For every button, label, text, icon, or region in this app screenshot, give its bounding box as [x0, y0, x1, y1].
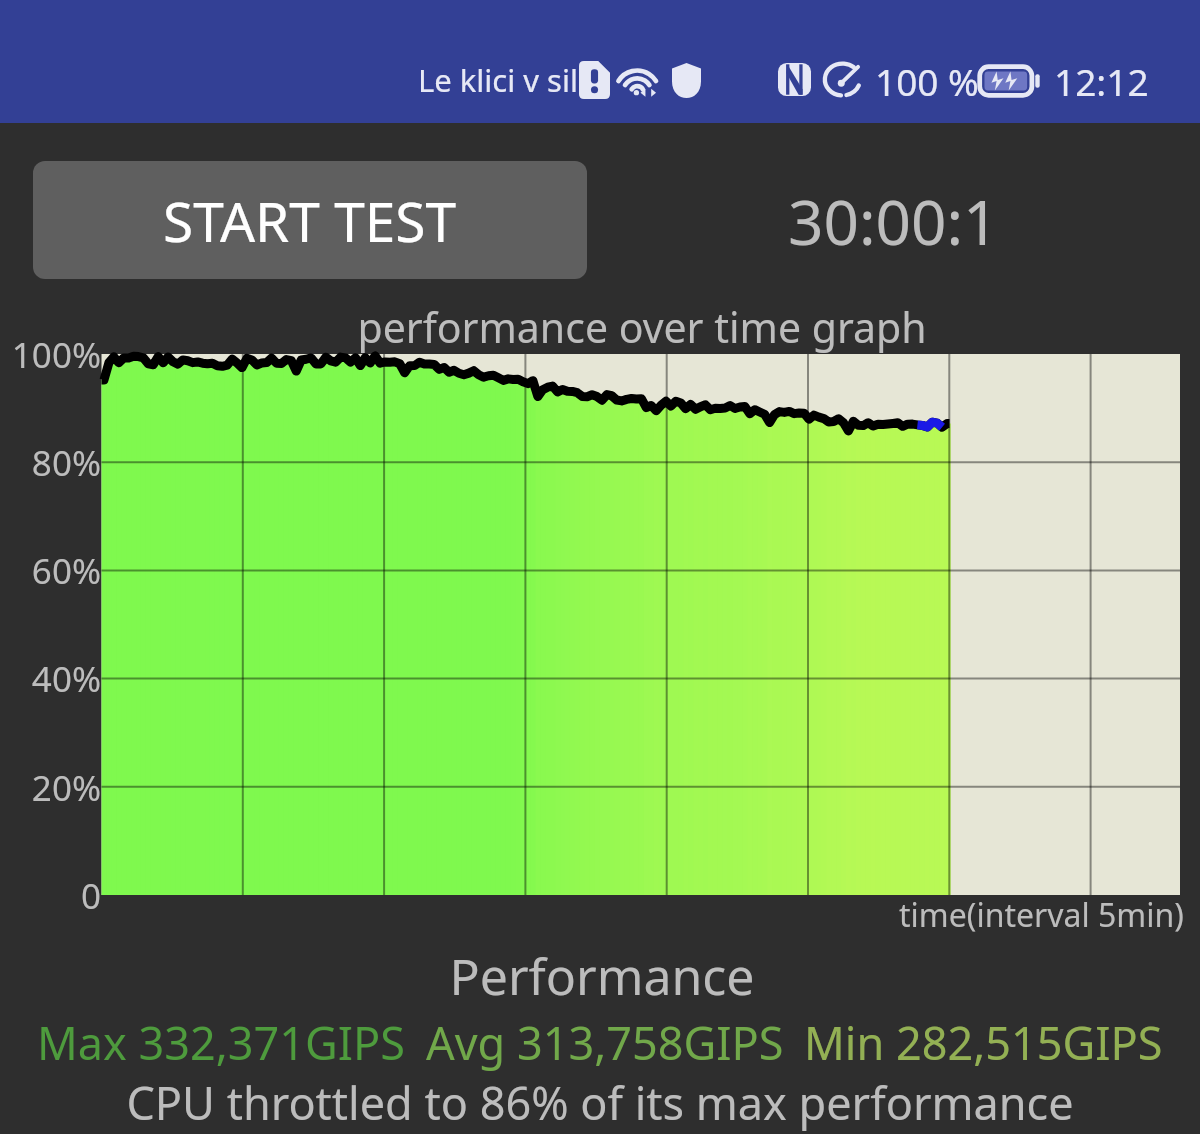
staticText: 80%	[0, 439, 101, 487]
staticText: 100%	[0, 331, 101, 379]
staticText: 12:12	[1054, 56, 1149, 106]
staticText: START TEST	[163, 183, 457, 258]
staticText: CPU throttled to 86% of its max performa…	[0, 1072, 1200, 1133]
staticText: 60%	[0, 547, 101, 595]
staticText: Avg 313,758GIPS	[426, 1012, 784, 1073]
staticText: Le klici v sili	[418, 59, 586, 101]
staticText: 100 %	[875, 56, 979, 106]
staticText: time(interval 5min)	[899, 893, 1184, 937]
staticText: Performance	[2, 942, 1200, 1010]
staticText: Max 332,371GIPS	[37, 1012, 406, 1073]
staticText: 0	[0, 872, 101, 920]
staticText: performance over time graph	[42, 299, 1200, 355]
staticText: Min 282,515GIPS	[804, 1012, 1163, 1073]
staticText: 30:00:1	[788, 179, 999, 263]
button[interactable]: START TEST	[33, 161, 587, 279]
staticText: 20%	[0, 764, 101, 812]
staticText: 40%	[0, 655, 101, 703]
